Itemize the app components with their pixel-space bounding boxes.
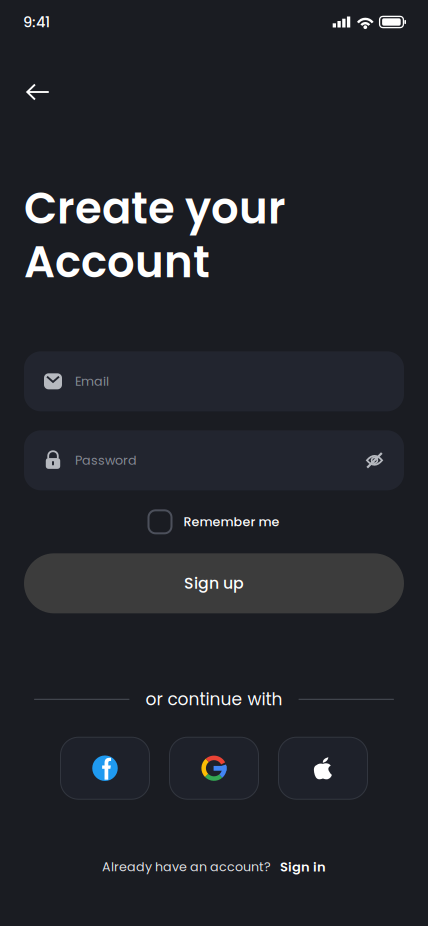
button[interactable]: Back (15, 74, 61, 110)
staticText: Sign up (184, 572, 244, 594)
button[interactable]: Sign up with Apple (278, 737, 367, 799)
button[interactable]: Sign in (271, 858, 326, 876)
button[interactable]: Sign up with Google (169, 737, 258, 799)
staticText: Sign in (271, 858, 326, 876)
button[interactable]: Sign up with Facebook (60, 737, 149, 799)
staticText: Create your (24, 178, 286, 239)
staticText: 9:41 (23, 12, 50, 32)
staticText: Remember me (183, 513, 279, 531)
button[interactable]: Show password (366, 452, 383, 469)
staticText: or continue with (145, 687, 282, 711)
staticText: Email (75, 372, 109, 390)
button[interactable]: Remember me (148, 510, 279, 533)
staticText: Account (24, 232, 210, 292)
staticText: Password (75, 451, 137, 469)
staticText: Already have an account? (102, 858, 271, 876)
button[interactable]: Sign up (24, 553, 404, 613)
